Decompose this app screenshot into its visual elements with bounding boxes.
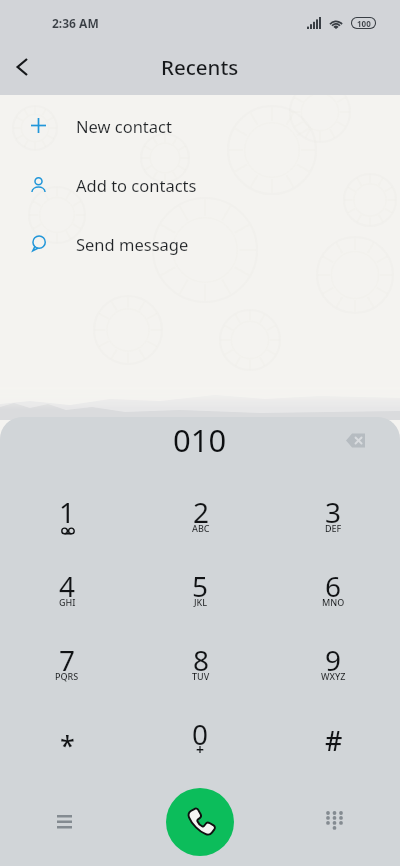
button[interactable]: New contact [0,96,400,155]
button[interactable]: Back [0,45,44,89]
staticText: Add to contacts [76,174,197,196]
button[interactable]: * [0,699,134,773]
button[interactable]: 9 [267,625,400,699]
staticText: 1 [59,493,76,531]
staticText: DEF [325,522,342,534]
button[interactable]: Add to contacts [0,155,400,214]
staticText: TUV [192,670,210,682]
button[interactable]: Backspace [340,425,370,455]
button[interactable]: Dialpad [311,797,358,844]
staticText: 5 [192,567,209,605]
button[interactable]: 3 [267,477,400,551]
staticText: PQRS [55,670,79,682]
staticText: New contact [76,115,172,137]
staticText: 6 [325,567,342,605]
button[interactable]: 7 [0,625,134,699]
staticText: 4 [59,567,76,605]
staticText: 3 [325,493,342,531]
button[interactable]: # [267,699,400,773]
staticText: 0 [192,715,209,753]
button[interactable]: 2 [134,477,267,551]
staticText: WXYZ [321,670,346,682]
button[interactable]: 8 [134,625,267,699]
staticText: 100 [357,18,371,28]
staticText: 010 [173,419,227,461]
button[interactable]: 0 [134,699,267,773]
staticText: ABC [192,522,210,534]
staticText: MNO [322,596,345,608]
staticText: 2:36 AM [52,15,99,31]
button[interactable]: 1 [0,477,134,551]
staticText: 2 [193,493,210,531]
button[interactable]: 4 [0,551,134,625]
button[interactable]: Menu [41,797,88,844]
staticText: * [60,727,75,764]
button[interactable]: 6 [267,551,400,625]
staticText: 8 [193,641,210,679]
button[interactable]: Send message [0,214,400,273]
button[interactable]: 5 [134,551,267,625]
staticText: GHI [59,596,76,608]
staticText: 7 [59,641,76,679]
staticText: JKL [194,596,208,608]
staticText: 9 [325,641,342,679]
staticText: # [325,722,343,759]
staticText: + [196,740,205,759]
staticText: Send message [76,233,189,255]
button[interactable]: Call [166,788,234,856]
staticText: Recents [161,53,239,81]
